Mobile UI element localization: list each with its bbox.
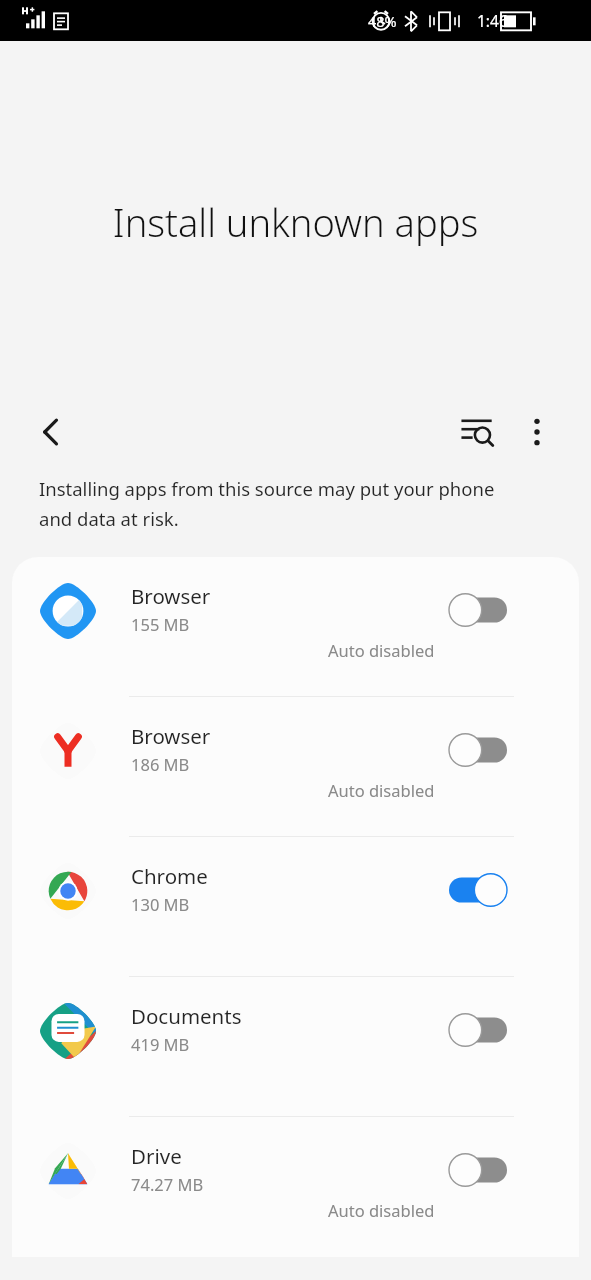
button[interactable]: Drive	[12, 1117, 579, 1257]
staticText: Drive	[131, 1142, 182, 1170]
staticText: Installing apps from this source may put…	[39, 476, 521, 531]
staticText: Browser	[131, 722, 211, 750]
staticText: Auto disabled	[328, 779, 435, 801]
staticText: 186 MB	[131, 753, 190, 775]
button[interactable]	[449, 733, 507, 767]
staticText: Auto disabled	[328, 639, 435, 661]
staticText: 155 MB	[131, 613, 190, 635]
button[interactable]: Chrome	[12, 837, 579, 977]
button[interactable]: Search	[448, 404, 504, 460]
button[interactable]: Browser	[12, 697, 579, 837]
staticText: 419 MB	[131, 1033, 190, 1055]
button[interactable]: Documents	[12, 977, 579, 1117]
staticText: Documents	[131, 1002, 242, 1030]
button[interactable]	[449, 873, 507, 907]
staticText: Auto disabled	[328, 1199, 435, 1221]
button[interactable]	[449, 1153, 507, 1187]
button[interactable]	[449, 1013, 507, 1047]
staticText: Browser	[131, 582, 211, 610]
staticText: 48%	[368, 11, 397, 31]
staticText: 1:46	[477, 10, 508, 31]
button[interactable]: More options	[509, 404, 565, 460]
staticText: 130 MB	[131, 893, 190, 915]
button[interactable]: Browser	[12, 557, 579, 697]
button[interactable]	[449, 593, 507, 627]
staticText: 74.27 MB	[131, 1173, 204, 1195]
staticText: Install unknown apps	[88, 196, 503, 248]
button[interactable]: Back	[22, 404, 78, 460]
staticText: Chrome	[131, 862, 208, 890]
